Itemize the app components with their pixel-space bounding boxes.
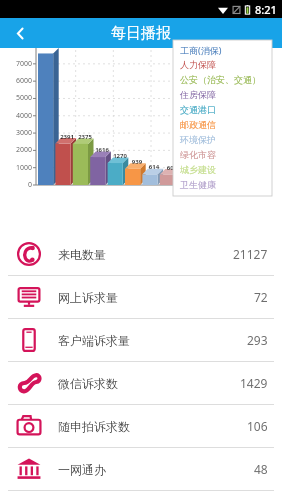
- staticText: 5000: [2, 93, 32, 103]
- staticText: 绿化市容: [180, 149, 216, 164]
- staticText: 卫生健康: [180, 179, 216, 194]
- staticText: 2000: [2, 145, 32, 155]
- staticText: 4000: [2, 111, 32, 121]
- staticText: 1270: [109, 152, 131, 160]
- staticText: 客户端诉求量: [58, 333, 130, 348]
- staticText: 2375: [74, 133, 96, 141]
- button[interactable]: 网上诉求量: [0, 276, 282, 318]
- staticText: 3000: [2, 128, 32, 138]
- staticText: 1429: [240, 375, 268, 391]
- staticText: 0: [2, 180, 32, 190]
- button[interactable]: 来电数量: [0, 233, 282, 275]
- button[interactable]: 客户端诉求量: [0, 319, 282, 361]
- staticText: 939: [126, 158, 148, 166]
- staticText: 48: [254, 461, 268, 477]
- staticText: 614: [143, 163, 165, 171]
- staticText: 21127: [233, 246, 268, 262]
- button[interactable]: Back: [0, 18, 40, 48]
- staticText: 518: [196, 165, 218, 173]
- staticText: 72: [254, 289, 268, 305]
- staticText: 环境保护: [180, 134, 216, 149]
- staticText: 2391: [56, 133, 78, 141]
- staticText: 606: [161, 164, 183, 172]
- staticText: 网上诉求量: [58, 290, 118, 305]
- staticText: 293: [247, 332, 268, 348]
- staticText: 微信诉求数: [58, 376, 118, 391]
- staticText: 581: [178, 164, 200, 172]
- staticText: 公安（治安、交通）: [180, 74, 261, 89]
- staticText: 6000: [2, 76, 32, 86]
- staticText: 106: [247, 418, 268, 434]
- staticText: 8:21: [255, 2, 277, 17]
- staticText: 一网通办: [58, 462, 106, 477]
- staticText: 工商(消保): [180, 44, 222, 59]
- button[interactable]: 微信诉求数: [0, 362, 282, 404]
- staticText: 城乡建设: [180, 164, 216, 179]
- staticText: 人力保障: [180, 59, 216, 74]
- staticText: 7000: [2, 59, 32, 69]
- staticText: 每日播报: [111, 24, 171, 43]
- button[interactable]: 随申拍诉求数: [0, 405, 282, 447]
- staticText: 1616: [91, 146, 113, 154]
- staticText: 交通港口: [180, 104, 216, 119]
- staticText: 1000: [2, 163, 32, 173]
- staticText: 随申拍诉求数: [58, 419, 130, 434]
- staticText: 来电数量: [58, 247, 106, 262]
- staticText: 住房保障: [180, 89, 216, 104]
- staticText: 邮政通信: [180, 119, 216, 134]
- button[interactable]: 一网通办: [0, 448, 282, 490]
